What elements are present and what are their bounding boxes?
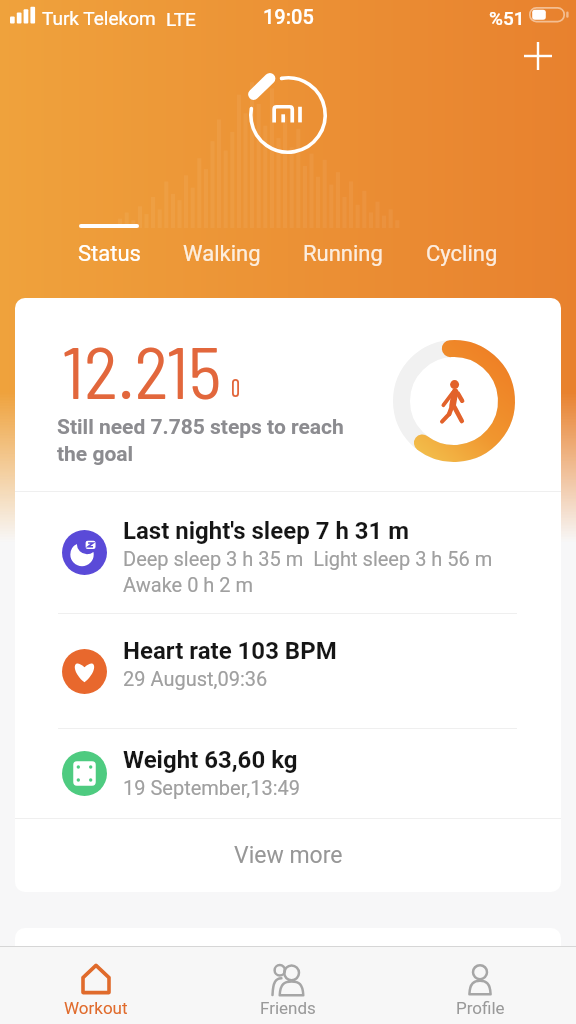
button[interactable]: Running [287,214,399,270]
staticText: 19:05 [263,5,314,28]
staticText: Walking [183,241,261,267]
button[interactable]: Cycling [406,214,518,270]
staticText: Running [303,241,383,267]
staticText: Deep sleep 3 h 35 m Light sleep 3 h 56 m… [123,547,493,596]
button[interactable]: Workout [0,947,192,1024]
button[interactable]: Profile [384,947,576,1024]
staticText: Last night's sleep 7 h 31 m [123,517,410,545]
button[interactable]: View more [15,819,561,892]
button[interactable]: Add [515,33,561,79]
staticText: Turk Telekom [42,7,156,29]
staticText: Status [78,241,141,267]
staticText: 19 September,13:49 [123,776,300,799]
staticText: Weight 63,60 kg [123,746,298,774]
button[interactable]: Last night's sleep 7 h 31 m [15,492,561,613]
button[interactable]: Friends [192,947,384,1024]
button[interactable]: Walking [166,214,278,270]
staticText: LTE [166,8,196,30]
staticText: Profile [456,998,505,1018]
staticText: Cycling [426,241,498,267]
staticText: Heart rate 103 BPM [123,637,337,665]
staticText: View more [234,842,343,869]
staticText: Workout [64,998,128,1018]
staticText: 29 August,09:36 [123,667,268,690]
button[interactable]: Status [53,214,165,270]
staticText: %51 [489,7,525,29]
button[interactable]: Heart rate 103 BPM [15,614,561,728]
staticText: 12.215 [62,327,222,413]
staticText: Friends [260,998,316,1018]
button[interactable]: Weight 63,60 kg [15,729,561,818]
staticText: Still need 7.785 steps to reach the goal [57,415,344,466]
